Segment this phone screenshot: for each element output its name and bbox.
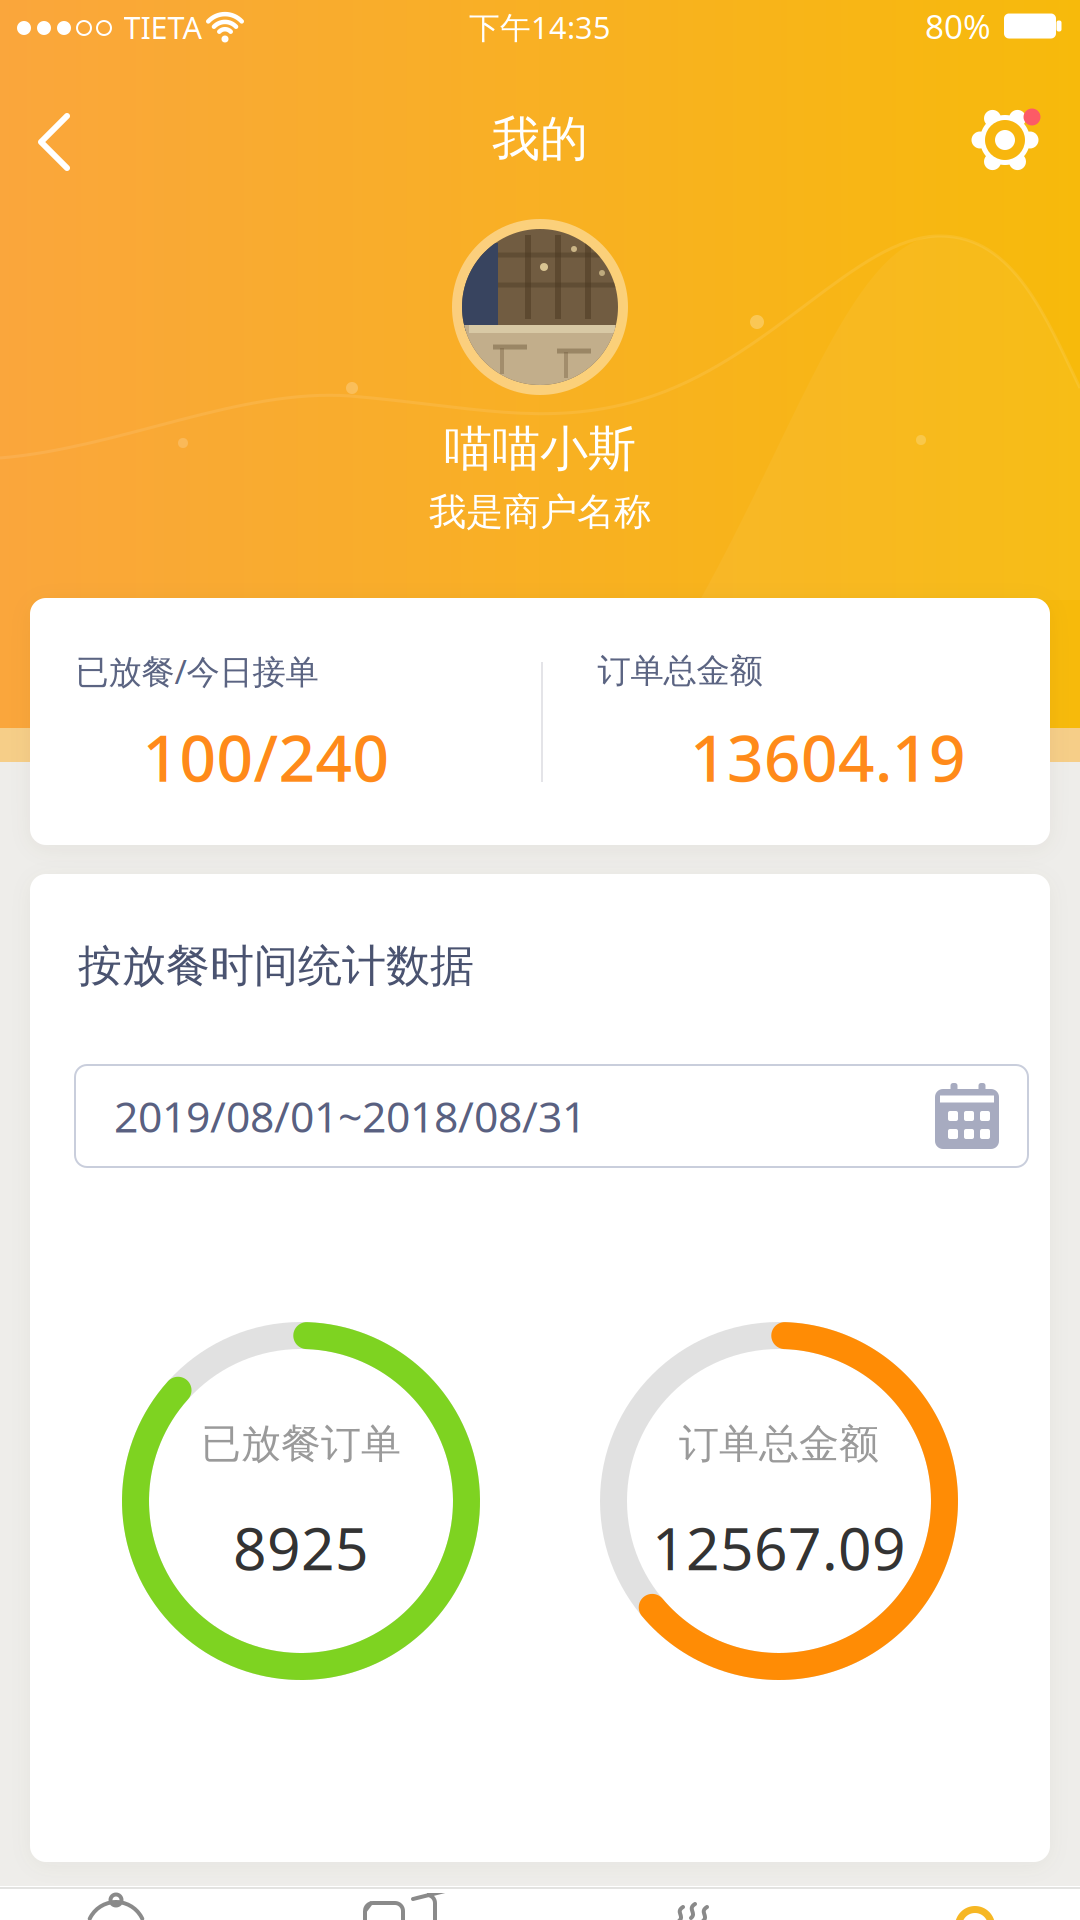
staticText: 13604.19 xyxy=(690,714,966,799)
staticText: 按放餐时间统计数据 xyxy=(78,939,474,993)
staticText: 已放餐/今日接单 xyxy=(75,649,318,693)
staticText: 2019/08/01~2018/08/31 xyxy=(114,1088,586,1144)
staticText: 订单总金额 xyxy=(597,650,762,691)
button[interactable]: Messages xyxy=(275,1886,535,1920)
button[interactable]: Settings xyxy=(967,93,1057,183)
staticText: 我是商户名称 xyxy=(429,489,651,535)
button[interactable]: Select date range xyxy=(75,1065,1028,1167)
staticText: 下午14:35 xyxy=(469,7,611,47)
staticText: 100/240 xyxy=(142,714,389,799)
staticText: 订单总金额 xyxy=(679,1419,879,1469)
staticText: TIETA xyxy=(123,7,202,47)
staticText: 8925 xyxy=(233,1509,369,1586)
staticText: 80% xyxy=(925,4,991,48)
staticText: 我的 xyxy=(492,109,588,168)
button[interactable]: Mine xyxy=(815,1886,1075,1920)
button[interactable]: Statistics xyxy=(545,1886,805,1920)
staticText: 12567.09 xyxy=(652,1509,906,1586)
button[interactable]: Back xyxy=(21,96,87,188)
staticText: 已放餐订单 xyxy=(201,1419,401,1469)
staticText: 喵喵小斯 xyxy=(444,419,636,478)
button[interactable]: Orders xyxy=(5,1886,265,1920)
